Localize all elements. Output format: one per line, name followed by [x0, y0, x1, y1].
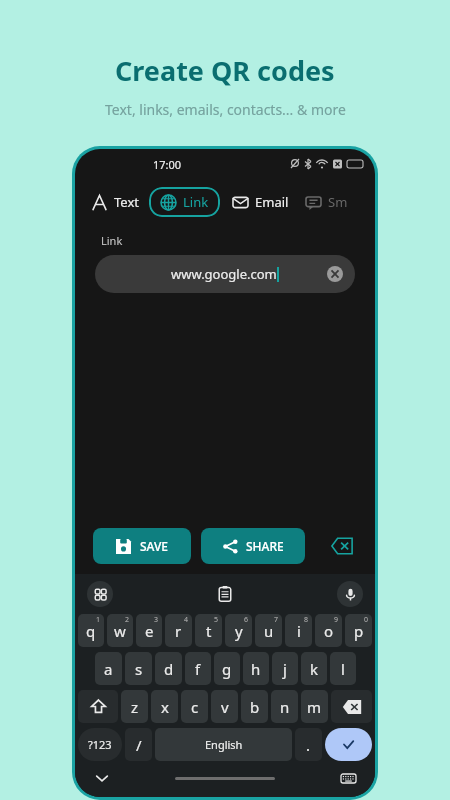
- staticText: Text: [114, 193, 139, 211]
- button[interactable]: Link: [160, 193, 209, 211]
- staticText: t: [206, 621, 212, 641]
- staticText: Email: [255, 193, 289, 211]
- staticText: 1: [96, 615, 101, 625]
- button[interactable]: b: [241, 690, 268, 723]
- staticText: 8: [304, 615, 309, 625]
- staticText: i: [297, 621, 301, 641]
- button[interactable]: j: [272, 652, 298, 685]
- staticText: 7: [274, 615, 279, 625]
- button[interactable]: l: [330, 652, 356, 685]
- button[interactable]: d: [155, 652, 182, 685]
- staticText: 9: [334, 615, 339, 625]
- button[interactable]: Enter: [325, 728, 372, 761]
- staticText: Sm: [328, 193, 348, 211]
- staticText: j: [283, 659, 287, 679]
- button[interactable]: g: [214, 652, 240, 685]
- staticText: SAVE: [140, 538, 169, 554]
- staticText: n: [280, 697, 290, 717]
- staticText: h: [251, 659, 261, 679]
- staticText: 6: [244, 615, 249, 625]
- staticText: r: [175, 621, 182, 641]
- staticText: s: [135, 659, 143, 679]
- staticText: d: [164, 659, 174, 679]
- button[interactable]: Delete: [327, 531, 357, 561]
- staticText: k: [310, 659, 319, 679]
- staticText: 2: [125, 615, 130, 625]
- staticText: .: [306, 735, 311, 755]
- staticText: SHARE: [246, 538, 284, 554]
- staticText: o: [324, 621, 334, 641]
- staticText: l: [341, 659, 345, 679]
- button[interactable]: SHARE: [201, 528, 305, 564]
- staticText: e: [145, 621, 154, 641]
- staticText: 3: [154, 615, 159, 625]
- button[interactable]: Switch keyboard: [337, 767, 359, 789]
- staticText: z: [131, 697, 139, 717]
- button[interactable]: q: [78, 614, 104, 647]
- button[interactable]: s: [125, 652, 152, 685]
- staticText: x: [161, 697, 169, 717]
- button[interactable]: Text: [91, 193, 139, 211]
- staticText: 4: [184, 615, 189, 625]
- staticText: a: [104, 659, 113, 679]
- button[interactable]: a: [95, 652, 122, 685]
- button[interactable]: Voice input: [337, 581, 363, 607]
- staticText: 0: [364, 615, 369, 625]
- button[interactable]: [78, 690, 118, 723]
- button[interactable]: Menu: [87, 581, 113, 607]
- button[interactable]: Sm: [305, 193, 348, 211]
- button[interactable]: Email: [232, 193, 289, 211]
- staticText: /: [136, 735, 142, 755]
- button[interactable]: n: [271, 690, 298, 723]
- staticText: m: [307, 697, 322, 717]
- staticText: f: [195, 659, 201, 679]
- staticText: Create QR codes: [115, 52, 335, 89]
- staticText: y: [235, 621, 243, 641]
- staticText: p: [354, 621, 364, 641]
- staticText: ?123: [88, 737, 112, 752]
- button[interactable]: e: [136, 614, 162, 647]
- button[interactable]: h: [243, 652, 269, 685]
- staticText: b: [250, 697, 260, 717]
- button[interactable]: [331, 690, 372, 723]
- button[interactable]: f: [185, 652, 211, 685]
- button[interactable]: SAVE: [93, 528, 191, 564]
- button[interactable]: English: [155, 728, 292, 761]
- staticText: English: [205, 737, 243, 752]
- button[interactable]: o: [315, 614, 342, 647]
- button[interactable]: m: [301, 690, 328, 723]
- button[interactable]: Paste: [213, 582, 237, 606]
- button[interactable]: v: [211, 690, 238, 723]
- staticText: c: [191, 697, 199, 717]
- button[interactable]: t: [195, 614, 222, 647]
- button[interactable]: .: [295, 728, 322, 761]
- button[interactable]: ?123: [78, 728, 122, 761]
- staticText: w: [114, 621, 126, 641]
- button[interactable]: k: [301, 652, 327, 685]
- button[interactable]: i: [285, 614, 312, 647]
- button[interactable]: r: [165, 614, 192, 647]
- staticText: u: [264, 621, 274, 641]
- button[interactable]: w: [107, 614, 133, 647]
- button[interactable]: u: [255, 614, 282, 647]
- staticText: Link: [183, 193, 209, 211]
- button[interactable]: Clear: [327, 266, 343, 282]
- staticText: 5: [214, 615, 219, 625]
- button[interactable]: www.google.com: [95, 255, 355, 293]
- button[interactable]: z: [121, 690, 148, 723]
- staticText: g: [222, 659, 232, 679]
- staticText: Text, links, emails, contacts... & more: [105, 100, 346, 119]
- staticText: q: [86, 621, 96, 641]
- button[interactable]: Hide keyboard: [91, 767, 113, 789]
- staticText: 17:00: [153, 157, 182, 172]
- button[interactable]: /: [125, 728, 152, 761]
- button[interactable]: y: [225, 614, 252, 647]
- staticText: v: [221, 697, 229, 717]
- button[interactable]: p: [345, 614, 372, 647]
- staticText: www.google.com: [171, 265, 277, 283]
- staticText: Link: [101, 233, 123, 248]
- button[interactable]: c: [181, 690, 208, 723]
- button[interactable]: x: [151, 690, 178, 723]
